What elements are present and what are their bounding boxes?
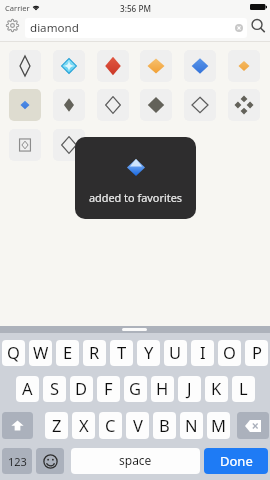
button[interactable]: Shift: [2, 412, 33, 439]
button[interactable]: B: [153, 412, 176, 439]
button[interactable]: diamond: [25, 18, 247, 38]
button[interactable]: H: [151, 376, 174, 402]
staticText: X: [79, 414, 89, 436]
button[interactable]: G: [124, 376, 147, 402]
button[interactable]: diamond symbol: [97, 50, 129, 82]
button[interactable]: diamond symbol: [9, 89, 41, 121]
button[interactable]: diamond symbol: [9, 50, 41, 82]
staticText: Carrier: [5, 3, 30, 13]
staticText: K: [211, 377, 222, 399]
button[interactable]: diamond symbol: [9, 129, 41, 161]
button[interactable]: U: [164, 340, 187, 366]
button[interactable]: W: [29, 340, 52, 366]
staticText: Q: [7, 341, 20, 363]
button[interactable]: I: [191, 340, 214, 366]
button[interactable]: E: [56, 340, 79, 366]
button[interactable]: S: [43, 376, 66, 402]
staticText: T: [117, 341, 127, 363]
button[interactable]: added to favorites: [75, 137, 196, 219]
staticText: V: [133, 414, 143, 436]
button[interactable]: L: [232, 376, 255, 402]
staticText: C: [105, 414, 116, 436]
staticText: B: [159, 414, 170, 436]
button[interactable]: diamond symbol: [53, 129, 85, 161]
button[interactable]: Resize keyboard: [122, 328, 147, 331]
button[interactable]: M: [207, 412, 230, 439]
button[interactable]: Done: [204, 448, 268, 474]
staticText: Done: [220, 452, 253, 470]
button[interactable]: Backspace: [237, 412, 269, 439]
button[interactable]: diamond symbol: [140, 89, 172, 121]
staticText: D: [75, 377, 88, 399]
button[interactable]: X: [72, 412, 95, 439]
staticText: 123: [8, 454, 27, 469]
staticText: S: [50, 377, 60, 399]
staticText: A: [22, 377, 33, 399]
staticText: U: [169, 341, 182, 363]
button[interactable]: N: [180, 412, 203, 439]
staticText: R: [89, 341, 100, 363]
button[interactable]: C: [99, 412, 122, 439]
button[interactable]: V: [126, 412, 149, 439]
staticText: W: [33, 341, 49, 363]
button[interactable]: Clear text: [235, 24, 243, 32]
button[interactable]: diamond symbol: [184, 89, 216, 121]
staticText: space: [119, 452, 152, 468]
staticText: O: [223, 341, 236, 363]
button[interactable]: D: [70, 376, 93, 402]
button[interactable]: space: [71, 448, 200, 474]
button[interactable]: F: [97, 376, 120, 402]
button[interactable]: K: [205, 376, 228, 402]
staticText: E: [63, 341, 73, 363]
button[interactable]: Z: [45, 412, 68, 439]
staticText: Y: [144, 341, 154, 363]
button[interactable]: 123: [2, 448, 32, 474]
staticText: H: [156, 377, 169, 399]
staticText: M: [211, 414, 226, 436]
button[interactable]: diamond symbol: [53, 89, 85, 121]
staticText: added to favorites: [75, 190, 196, 205]
staticText: N: [185, 414, 198, 436]
staticText: diamond: [30, 20, 79, 36]
button[interactable]: Y: [137, 340, 160, 366]
button[interactable]: diamond symbol: [97, 89, 129, 121]
button[interactable]: Q: [2, 340, 25, 366]
button[interactable]: O: [218, 340, 241, 366]
staticText: J: [187, 377, 192, 399]
button[interactable]: T: [110, 340, 133, 366]
button[interactable]: diamond symbol: [184, 50, 216, 82]
button[interactable]: R: [83, 340, 106, 366]
staticText: G: [129, 377, 142, 399]
button[interactable]: diamond symbol: [228, 89, 260, 121]
button[interactable]: P: [245, 340, 268, 366]
staticText: L: [239, 377, 248, 399]
button[interactable]: Search: [248, 16, 267, 35]
button[interactable]: diamond symbol: [140, 50, 172, 82]
button[interactable]: A: [16, 376, 39, 402]
button[interactable]: diamond symbol: [228, 50, 260, 82]
button[interactable]: diamond symbol: [53, 50, 85, 82]
staticText: P: [252, 341, 262, 363]
button[interactable]: J: [178, 376, 201, 402]
staticText: Z: [52, 414, 62, 436]
button[interactable]: Settings: [3, 16, 22, 35]
staticText: F: [104, 377, 113, 399]
staticText: 3:56 PM: [120, 3, 151, 14]
button[interactable]: Emoji keyboard: [36, 448, 64, 474]
staticText: I: [200, 341, 206, 363]
